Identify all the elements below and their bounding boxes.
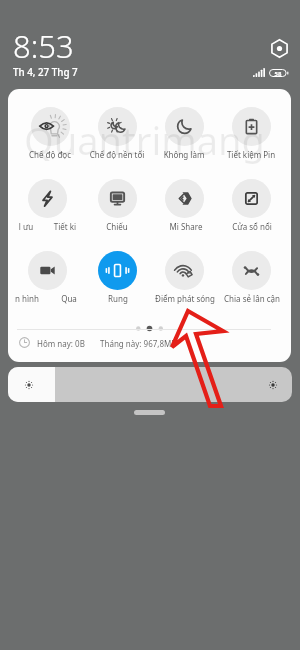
- button[interactable]: [218, 105, 284, 162]
- button[interactable]: [84, 105, 150, 162]
- button[interactable]: [14, 177, 80, 234]
- staticText: Quantrimang: [24, 114, 265, 166]
- button[interactable]: Settings: [270, 39, 289, 58]
- staticText: Tiết ki: [17, 221, 113, 233]
- button[interactable]: Brightness: [8, 367, 292, 402]
- staticText: Cửa sổ nổi: [204, 221, 291, 233]
- staticText: Điểm phát sóng: [137, 293, 233, 305]
- staticText: Chiếu: [69, 221, 165, 233]
- staticText: l ưu: [8, 221, 74, 233]
- staticText: Mi Share: [138, 221, 234, 233]
- staticText: Tháng này: 967,8MB: [100, 338, 177, 349]
- staticText: Th 4, 27 Thg 7: [13, 66, 78, 79]
- staticText: Hôm nay: 0B: [37, 338, 85, 349]
- staticText: Qua: [21, 293, 117, 305]
- staticText: Chế độ nền tối: [69, 149, 165, 161]
- button[interactable]: [151, 177, 217, 234]
- staticText: 8:53: [13, 25, 74, 67]
- button[interactable]: [151, 105, 217, 162]
- button[interactable]: [84, 177, 150, 234]
- staticText: 58: [270, 70, 286, 78]
- staticText: Tiết kiệm Pin: [203, 149, 291, 161]
- staticText: Không làm: [136, 149, 232, 161]
- button[interactable]: [218, 249, 284, 306]
- button[interactable]: [151, 249, 217, 306]
- button[interactable]: [17, 105, 83, 162]
- button[interactable]: [14, 249, 80, 306]
- button[interactable]: [84, 249, 150, 306]
- staticText: Rung: [70, 293, 166, 305]
- staticText: Chia sẻ lân cận: [204, 293, 291, 305]
- button[interactable]: [218, 177, 284, 234]
- staticText: n hình: [8, 293, 75, 305]
- staticText: Chế độ đọc: [8, 149, 98, 161]
